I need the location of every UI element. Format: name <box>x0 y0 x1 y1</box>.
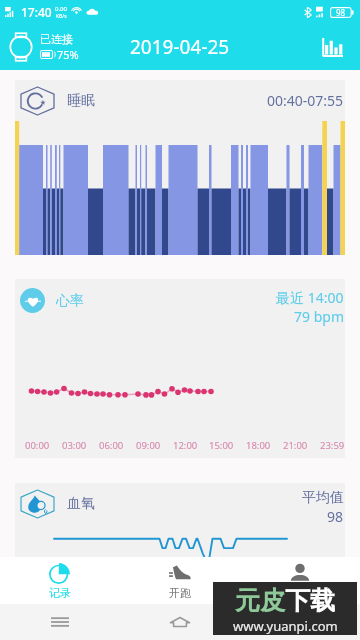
staticText: www.yuanpi.com <box>233 617 338 635</box>
staticText: 15:00 <box>209 439 234 452</box>
staticText: 18:00 <box>246 439 271 452</box>
button[interactable]: 记录 <box>0 557 120 604</box>
staticText: 已连接 <box>40 32 73 46</box>
staticText: 21:00 <box>283 439 308 452</box>
staticText: 79 bpm <box>294 307 344 326</box>
button[interactable]: 心率 <box>15 279 345 458</box>
staticText: 0.00 <box>55 5 67 13</box>
staticText: 血氧 <box>67 495 95 513</box>
button[interactable]: Statistics <box>314 29 350 65</box>
button[interactable]: 血氧 <box>15 483 345 557</box>
staticText: 09:00 <box>136 439 161 452</box>
staticText: 12:00 <box>173 439 198 452</box>
button[interactable]: 开跑 <box>120 557 240 604</box>
staticText: 我的 <box>289 586 311 600</box>
staticText: 记录 <box>49 586 71 600</box>
button[interactable]: Watch B31 connected <box>4 30 79 64</box>
staticText: 00:40-07:55 <box>267 91 344 110</box>
staticText: 75% <box>57 47 79 62</box>
other: Watch B31 connected <box>4 30 38 64</box>
button[interactable]: Recent apps <box>0 604 120 640</box>
staticText: KB/s <box>56 13 67 20</box>
staticText: 最近 14:00 <box>276 288 344 307</box>
staticText: 23:59 <box>320 439 345 452</box>
button[interactable]: Home <box>120 604 240 640</box>
staticText: 98 <box>327 507 344 526</box>
staticText: 00:00 <box>25 439 50 452</box>
staticText: 心率 <box>56 292 84 310</box>
button[interactable]: 睡眠 <box>15 80 345 255</box>
staticText: 开跑 <box>169 586 191 600</box>
staticText: 06:00 <box>99 439 124 452</box>
staticText: 98 <box>336 7 346 18</box>
staticText: 平均值 <box>302 489 344 507</box>
button[interactable]: 我的 <box>240 557 360 604</box>
button[interactable]: Back <box>240 604 360 640</box>
staticText: 17:40 <box>21 4 52 20</box>
staticText: 元皮 <box>235 585 285 616</box>
staticText: 下载 <box>285 585 335 616</box>
staticText: 2019-04-25 <box>130 34 230 60</box>
staticText: 03:00 <box>62 439 87 452</box>
staticText: 睡眠 <box>67 92 95 110</box>
